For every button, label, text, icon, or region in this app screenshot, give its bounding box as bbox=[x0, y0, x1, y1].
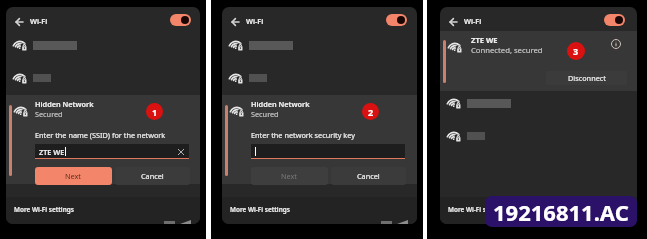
button[interactable] bbox=[440, 90, 637, 116]
button[interactable] bbox=[222, 65, 417, 91]
staticText: 3 bbox=[573, 45, 579, 57]
button[interactable]: Wi-Fi toggle bbox=[604, 14, 625, 26]
button[interactable]: Back bbox=[228, 15, 241, 28]
button[interactable] bbox=[222, 32, 417, 58]
staticText: 2 bbox=[368, 106, 374, 118]
staticText: Enter the name (SSID) for the network bbox=[35, 130, 166, 140]
staticText: Disconnect bbox=[568, 73, 606, 83]
button[interactable]: Back bbox=[446, 15, 459, 28]
staticText: ZTE WE bbox=[39, 147, 65, 157]
button[interactable]: Disconnect bbox=[546, 71, 627, 85]
staticText: Next bbox=[65, 171, 82, 181]
staticText: Secured bbox=[251, 109, 279, 119]
button[interactable]: More Wi-Fi settings bbox=[6, 197, 200, 224]
staticText: 1 bbox=[152, 106, 158, 118]
staticText: 19216811.AC bbox=[493, 197, 629, 227]
staticText: Next bbox=[281, 171, 298, 181]
button[interactable] bbox=[6, 32, 200, 58]
button[interactable]: Cancel bbox=[115, 167, 190, 185]
staticText: Hidden Network bbox=[251, 99, 310, 109]
staticText: Wi-Fi bbox=[246, 16, 264, 26]
staticText: Enter the network security key bbox=[251, 130, 355, 140]
button[interactable]: Cancel bbox=[331, 167, 406, 185]
button[interactable]: Wi-Fi toggle bbox=[170, 14, 191, 26]
button[interactable]: Wi-Fi toggle bbox=[386, 14, 407, 26]
staticText: ZTE WE bbox=[471, 35, 498, 45]
button[interactable]: Next bbox=[35, 167, 112, 185]
button[interactable] bbox=[6, 65, 200, 91]
staticText: Secured bbox=[35, 109, 63, 119]
staticText: Connected, secured bbox=[471, 45, 543, 55]
button[interactable]: More Wi-Fi settings bbox=[440, 197, 637, 224]
staticText: Hidden Network bbox=[35, 99, 94, 109]
staticText: Wi-Fi bbox=[464, 16, 482, 26]
button[interactable] bbox=[440, 123, 637, 149]
staticText: More Wi-Fi settings bbox=[14, 205, 74, 214]
button[interactable]: Next bbox=[251, 167, 328, 185]
button[interactable]: Network info bbox=[609, 37, 622, 50]
button[interactable]: Back bbox=[12, 15, 25, 28]
button[interactable]: More Wi-Fi settings bbox=[222, 197, 417, 224]
staticText: Cancel bbox=[357, 171, 380, 181]
staticText: Wi-Fi bbox=[30, 16, 48, 26]
staticText: Cancel bbox=[141, 171, 164, 181]
staticText: More Wi-Fi settings bbox=[230, 205, 290, 214]
staticText: More Wi-Fi settings bbox=[448, 205, 508, 214]
